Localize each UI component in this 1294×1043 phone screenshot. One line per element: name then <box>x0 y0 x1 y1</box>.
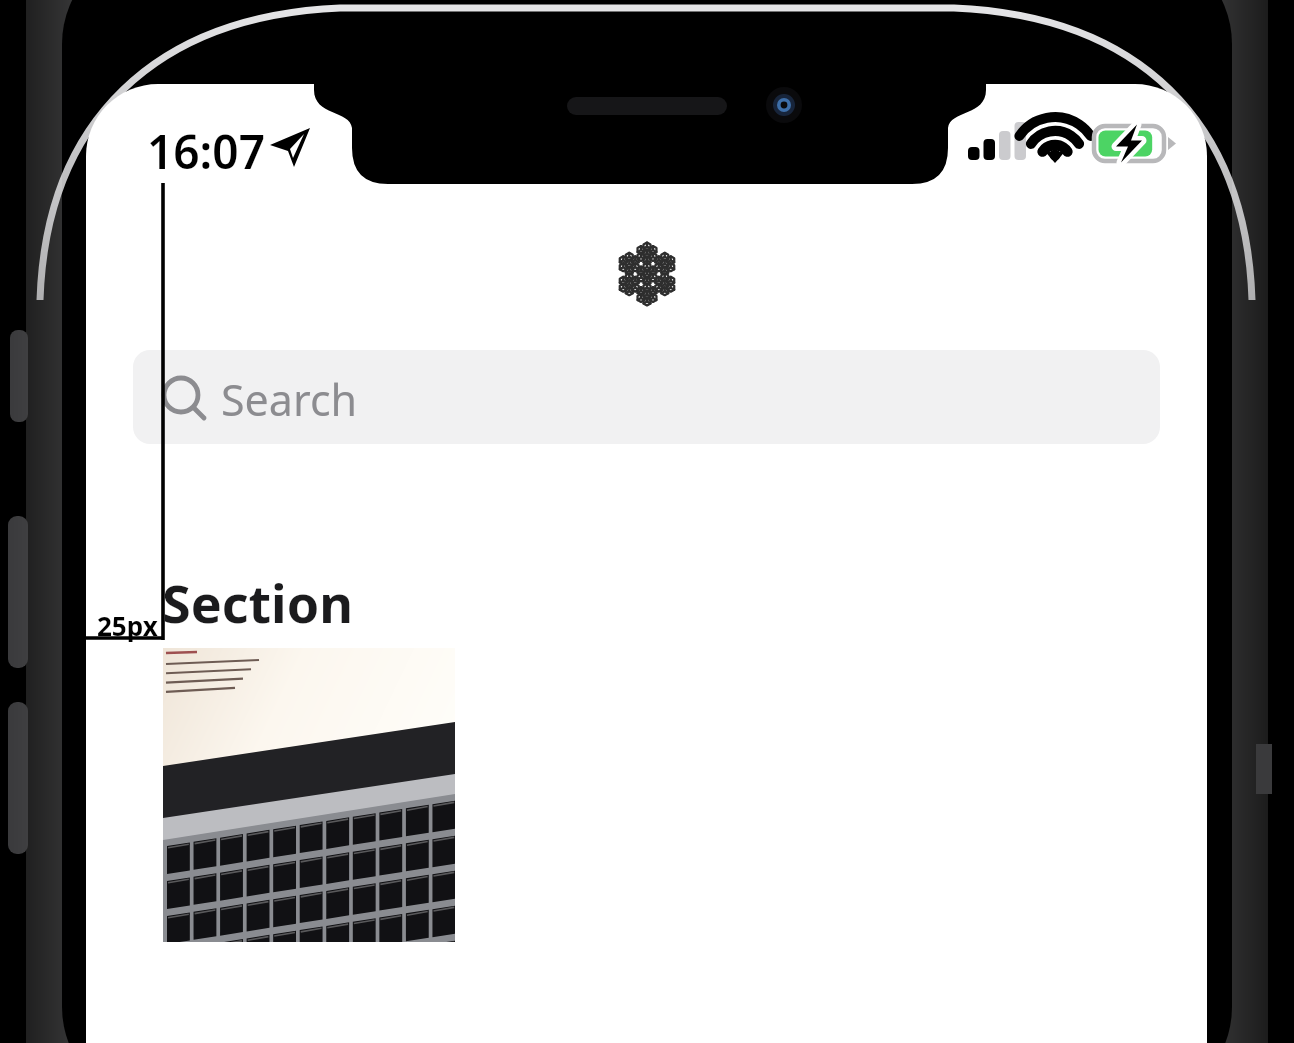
button[interactable]: Search field <box>133 350 1160 444</box>
staticText: Section <box>162 567 353 638</box>
button[interactable]: App logo <box>606 232 690 316</box>
staticText: Search <box>221 370 358 429</box>
staticText: 16:07 <box>147 120 265 183</box>
staticText: 25px <box>97 608 158 643</box>
button[interactable]: Section photo <box>163 648 455 942</box>
